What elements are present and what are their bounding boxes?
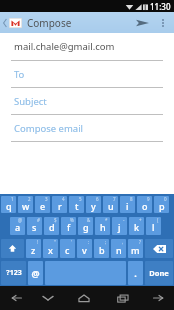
button[interactable]: ,	[111, 239, 126, 258]
staticText: q	[6, 200, 12, 212]
button[interactable]: 7	[103, 196, 118, 213]
staticText: ;	[105, 239, 107, 245]
button[interactable]: Recents	[103, 286, 142, 310]
button[interactable]: Delete	[145, 239, 173, 258]
staticText: @	[31, 267, 40, 279]
button[interactable]: ?	[128, 239, 143, 258]
button[interactable]: 9	[137, 196, 152, 213]
button[interactable]: ?123	[1, 261, 26, 285]
button[interactable]: (	[146, 217, 161, 235]
staticText: k	[134, 221, 140, 233]
button[interactable]: *	[95, 217, 110, 235]
staticText: t	[75, 200, 79, 212]
staticText: j	[118, 221, 121, 233]
staticText: ,	[122, 239, 124, 245]
button[interactable]: 2	[18, 196, 33, 213]
button[interactable]: Forward	[142, 286, 174, 310]
button[interactable]: 4	[52, 196, 67, 213]
staticText: 8	[130, 196, 133, 202]
button[interactable]: 8	[120, 196, 135, 213]
staticText: h	[100, 221, 106, 233]
button[interactable]: .	[128, 261, 143, 285]
staticText: a	[15, 221, 21, 233]
staticText: m	[131, 244, 140, 256]
button[interactable]: Hide keyboard	[32, 286, 64, 310]
staticText: *	[105, 217, 108, 223]
staticText: 4	[62, 196, 65, 202]
staticText: 1	[11, 196, 14, 202]
staticText: '	[71, 239, 73, 245]
staticText: w	[22, 200, 30, 212]
staticText: Compose email	[14, 122, 84, 135]
button[interactable]: Navigate up	[0, 12, 24, 33]
staticText: :	[88, 239, 90, 245]
button[interactable]: :	[77, 239, 92, 258]
button[interactable]: +	[129, 217, 144, 235]
staticText: 11:30	[150, 1, 171, 12]
staticText: Subject	[14, 95, 47, 108]
staticText: s	[32, 221, 37, 233]
staticText: 0	[164, 196, 167, 202]
staticText: mail.chale@gmail.com	[14, 40, 115, 53]
staticText: c	[65, 244, 70, 256]
staticText: n	[116, 244, 122, 256]
button[interactable]: &	[78, 217, 93, 235]
staticText: !	[37, 239, 39, 245]
staticText: "	[54, 239, 56, 245]
button[interactable]: @	[10, 217, 25, 235]
button[interactable]: 0	[154, 196, 169, 213]
staticText: &	[87, 217, 91, 223]
staticText: %	[70, 217, 74, 223]
staticText: f	[67, 221, 71, 233]
staticText: d	[49, 221, 55, 233]
staticText: u	[108, 200, 114, 212]
staticText: 9	[147, 196, 150, 202]
button[interactable]: !	[26, 239, 41, 258]
staticText: ?123	[6, 268, 22, 278]
staticText: x	[48, 244, 53, 256]
button[interactable]: $	[44, 217, 59, 235]
button[interactable]: ;	[94, 239, 109, 258]
button[interactable]: Shift	[1, 239, 24, 258]
button[interactable]: Send	[129, 12, 155, 33]
staticText: 2	[28, 196, 31, 202]
staticText: (	[157, 217, 159, 223]
staticText: v	[82, 244, 87, 256]
button[interactable]: 3	[35, 196, 50, 213]
button[interactable]: 5	[69, 196, 84, 213]
button[interactable]: @	[28, 261, 43, 285]
button[interactable]: -	[112, 217, 127, 235]
button[interactable]: %	[61, 217, 76, 235]
staticText: ?	[139, 239, 141, 245]
staticText: To	[14, 68, 25, 81]
staticText: @	[18, 217, 23, 223]
staticText: 5	[79, 196, 82, 202]
staticText: 6	[96, 196, 99, 202]
button[interactable]: To	[0, 61, 174, 88]
staticText: $	[54, 217, 57, 223]
staticText: i	[126, 200, 129, 212]
staticText: z	[31, 244, 36, 256]
staticText: g	[83, 221, 89, 233]
staticText: r	[58, 200, 62, 212]
staticText: +	[139, 217, 142, 223]
staticText: 7	[113, 196, 116, 202]
staticText: p	[159, 200, 165, 212]
button[interactable]: "	[43, 239, 58, 258]
button[interactable]: '	[60, 239, 75, 258]
button[interactable]: More options	[155, 12, 171, 33]
button[interactable]: mail.chale@gmail.com	[0, 33, 174, 61]
button[interactable]: 1	[1, 196, 16, 213]
staticText: #	[37, 217, 40, 223]
button[interactable]: #	[27, 217, 42, 235]
button[interactable]: Subject	[0, 88, 174, 115]
staticText: b	[99, 244, 105, 256]
button[interactable]: Compose email	[0, 115, 174, 142]
button[interactable]: Back	[0, 286, 32, 310]
button[interactable]: Home	[64, 286, 103, 310]
button[interactable]: 6	[86, 196, 101, 213]
staticText: l	[152, 221, 155, 233]
staticText: e	[40, 200, 46, 212]
button[interactable]: Done	[145, 261, 173, 285]
